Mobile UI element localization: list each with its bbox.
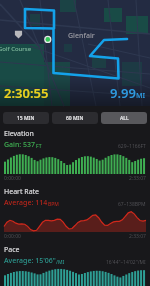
staticText: Glenfair [68,31,95,41]
button[interactable]: 60 MIN [52,112,98,124]
staticText: 15 MIN [17,115,35,122]
staticText: Gain: 537 [4,140,36,150]
staticText: 67–138BPM [118,201,146,208]
staticText: /MI [56,259,65,266]
staticText: Average: 15'06" [4,256,56,266]
staticText: 0:00:00 [4,233,21,240]
staticText: 2:33:07 [129,175,146,182]
staticText: 0:00:00 [4,175,21,182]
staticText: 2:30:55 [4,84,49,102]
staticText: 629–1166FT [118,143,146,150]
staticText: FT [36,143,42,150]
staticText: Golf Course [0,45,32,53]
staticText: 2:33:07 [129,233,146,240]
staticText: Elevation [4,129,34,139]
staticText: BPM [48,201,59,208]
button[interactable]: 15 MIN [3,112,49,124]
staticText: Average: 114 [4,198,48,208]
staticText: 9.99 [110,84,136,102]
staticText: Heart Rate [4,187,40,197]
staticText: 60 MIN [66,115,84,122]
staticText: Pace [4,245,20,255]
staticText: 16'44"–14'02"/MI [106,259,146,266]
button[interactable]: ALL [101,112,147,124]
staticText: ALL [120,115,129,122]
staticText: MI [136,91,146,101]
